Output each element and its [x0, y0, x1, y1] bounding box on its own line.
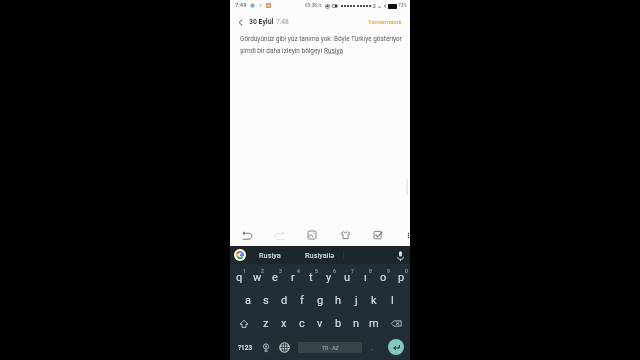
staticText: şimdi bir daha izleyin bölgeyi — [240, 47, 324, 55]
staticText: s — [263, 294, 269, 307]
staticText: q — [236, 271, 243, 284]
staticText: b — [335, 317, 342, 330]
staticText: 7 — [351, 268, 354, 274]
staticText: ?123 — [238, 344, 253, 352]
staticText: j — [355, 294, 358, 307]
button[interactable]: Voice input — [394, 249, 407, 262]
button[interactable]: Back — [233, 15, 247, 29]
button[interactable]: b — [329, 312, 347, 335]
button[interactable]: Emoji — [257, 335, 275, 360]
staticText: c — [299, 317, 305, 330]
staticText: z — [263, 317, 269, 330]
button[interactable]: s — [257, 289, 275, 312]
staticText: h — [335, 294, 342, 307]
staticText: u — [344, 271, 351, 284]
staticText: 0 — [405, 268, 408, 274]
staticText: 5 — [315, 268, 318, 274]
button[interactable]: q — [230, 266, 248, 289]
button[interactable]: Drawing — [336, 226, 354, 244]
button[interactable]: Shift — [230, 312, 257, 335]
button[interactable]: ı — [356, 266, 374, 289]
button[interactable]: h — [329, 289, 347, 312]
button[interactable]: z — [257, 312, 275, 335]
button[interactable]: More options — [399, 226, 417, 244]
staticText: r — [291, 271, 295, 284]
button[interactable]: Rusiya — [255, 247, 285, 264]
staticText: ı — [364, 271, 367, 284]
button[interactable]: Change keyboard language — [275, 335, 293, 360]
button[interactable]: Enter — [388, 339, 404, 355]
button[interactable]: ?123 — [233, 335, 257, 360]
staticText: 73% — [398, 3, 407, 9]
staticText: w — [253, 271, 262, 284]
staticText: Rusiya — [259, 251, 281, 260]
button[interactable]: Rusiyailə — [301, 247, 339, 264]
button[interactable]: e — [266, 266, 284, 289]
staticText: l — [391, 294, 394, 307]
staticText: m — [369, 317, 379, 330]
button[interactable]: TR · AZ — [298, 342, 362, 353]
button[interactable]: Backspace — [383, 312, 410, 335]
button[interactable]: g — [311, 289, 329, 312]
button[interactable]: l — [383, 289, 401, 312]
button[interactable]: Google search — [234, 249, 246, 261]
staticText: Tamamlandı — [368, 18, 402, 25]
staticText: TR · AZ — [322, 345, 339, 351]
button[interactable]: r — [284, 266, 302, 289]
staticText: 9 — [387, 268, 390, 274]
staticText: o — [380, 271, 387, 284]
button[interactable]: u — [338, 266, 356, 289]
staticText: n — [353, 317, 360, 330]
staticText: Rusiyailə — [305, 251, 335, 260]
staticText: 4 — [297, 268, 300, 274]
staticText: 65.3K/s — [305, 3, 322, 9]
staticText: f — [300, 294, 304, 307]
staticText: 3 — [279, 268, 282, 274]
staticText: 7:48 — [276, 18, 289, 26]
staticText: 30 Eylül — [249, 18, 274, 26]
staticText: t — [309, 271, 313, 284]
button[interactable]: c — [293, 312, 311, 335]
button[interactable]: j — [347, 289, 365, 312]
button[interactable]: Insert image — [303, 226, 321, 244]
button[interactable]: a — [239, 289, 257, 312]
staticText: x — [281, 317, 287, 330]
button[interactable]: p — [392, 266, 410, 289]
button[interactable]: Checklist — [369, 226, 387, 244]
button[interactable]: y — [320, 266, 338, 289]
button[interactable]: d — [275, 289, 293, 312]
button[interactable]: Tamamlandı — [360, 14, 410, 29]
button[interactable]: f — [293, 289, 311, 312]
staticText: g — [317, 294, 324, 307]
button[interactable]: Undo — [238, 226, 256, 244]
button[interactable]: t — [302, 266, 320, 289]
button[interactable]: m — [365, 312, 383, 335]
staticText: 2 — [373, 3, 376, 9]
staticText: a — [245, 294, 251, 307]
button[interactable]: Redo — [270, 226, 288, 244]
button[interactable]: o — [374, 266, 392, 289]
staticText: v — [317, 317, 323, 330]
staticText: 7:49 — [235, 2, 247, 9]
staticText: p — [398, 271, 405, 284]
button[interactable]: k — [365, 289, 383, 312]
staticText: y — [326, 271, 332, 284]
staticText: k — [371, 294, 377, 307]
button[interactable]: x — [275, 312, 293, 335]
staticText: Rusiya — [324, 47, 343, 55]
staticText: e — [272, 271, 278, 284]
staticText: d — [281, 294, 288, 307]
button[interactable]: w — [248, 266, 266, 289]
button[interactable]: n — [347, 312, 365, 335]
staticText: 1 — [243, 268, 246, 274]
staticText: . — [371, 344, 373, 352]
button[interactable]: v — [311, 312, 329, 335]
staticText: 2 — [261, 268, 264, 274]
staticText: Gördüyünüz gibi yüz tanıma yok. Böyle Tü… — [240, 35, 402, 43]
staticText: 6 — [333, 268, 336, 274]
staticText: 8 — [369, 268, 372, 274]
